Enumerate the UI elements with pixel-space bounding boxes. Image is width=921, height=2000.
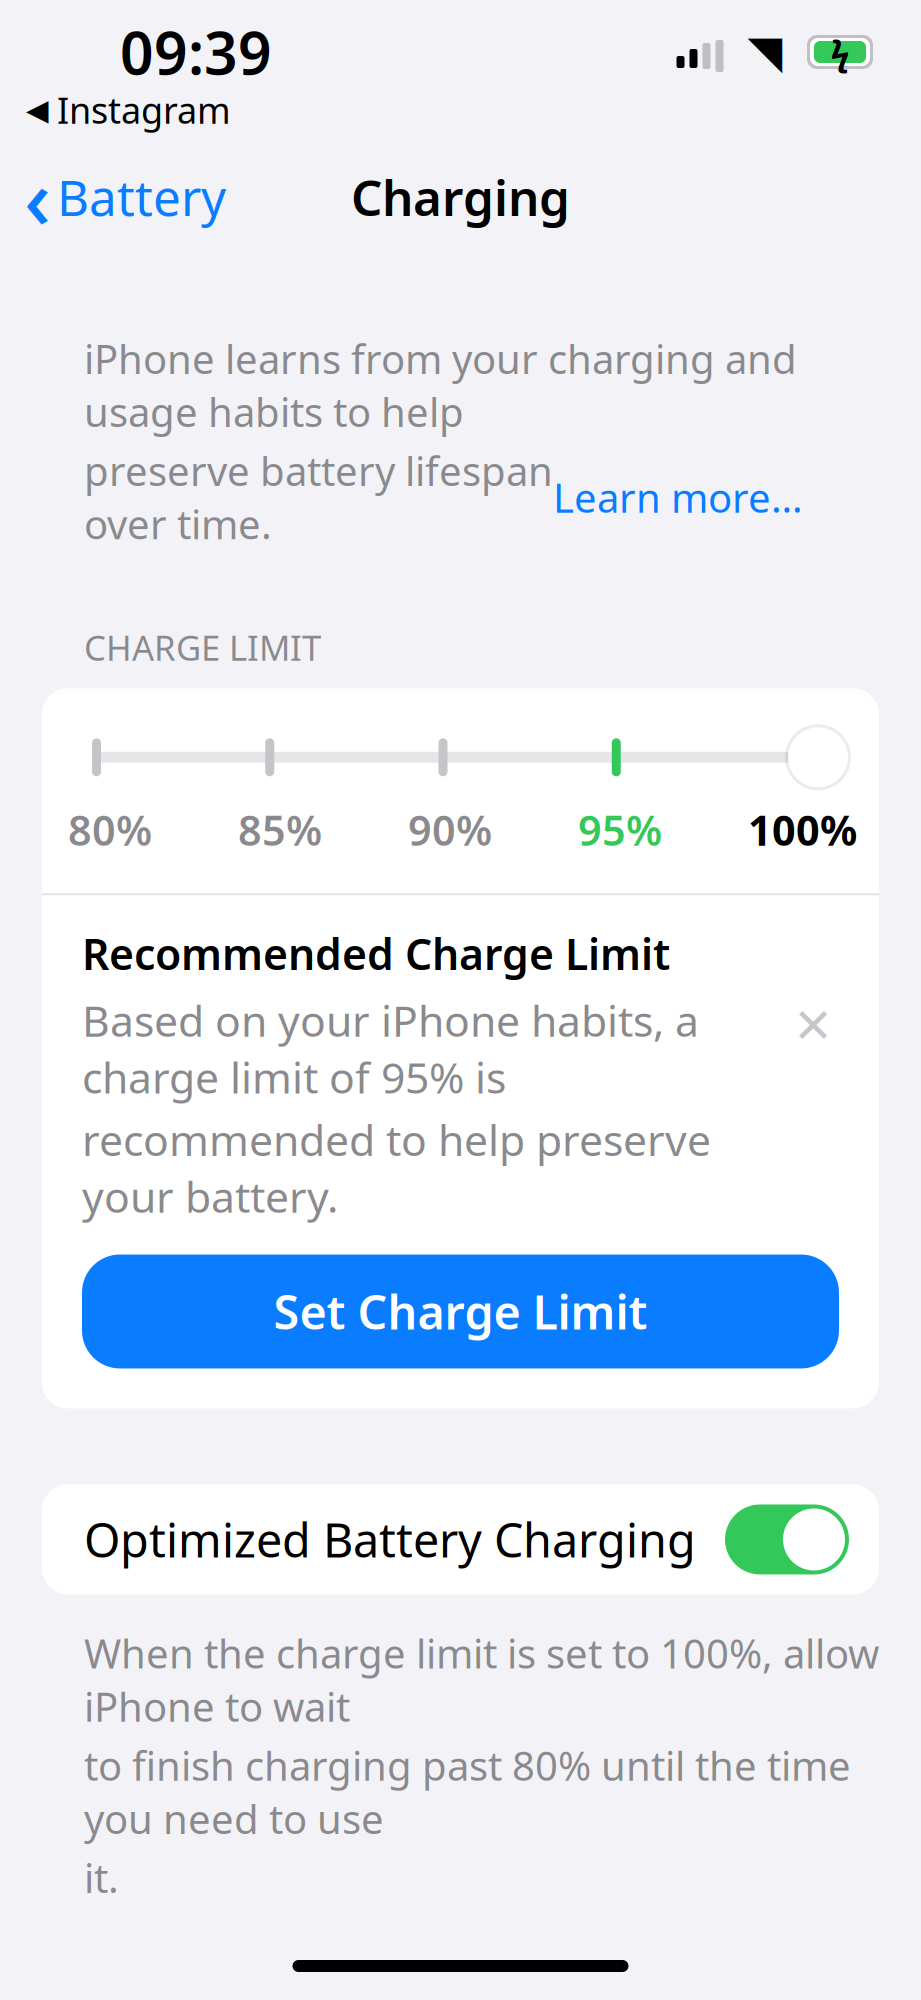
button[interactable]: ‹ [0,136,226,258]
staticText: iPhone learns from your charging and usa… [84,332,797,438]
staticText: Recommended Charge Limit [82,925,670,982]
staticText: Instagram [57,86,231,134]
staticText: preserve battery lifespan over time. [84,444,553,550]
staticText: 100% [748,802,857,857]
staticText: Battery [57,164,226,230]
button[interactable]: Learn more… [553,471,803,524]
staticText: 95% [578,802,662,857]
staticText: Optimized Battery Charging [84,1508,696,1570]
button[interactable]: Dismiss [787,1000,839,1052]
staticText: Set Charge Limit [273,1280,647,1342]
staticText: ‹ [24,142,51,252]
staticText: 80% [68,802,152,857]
staticText: When the charge limit is set to 100%, al… [84,1626,879,1733]
staticText: Based on your iPhone habits, a charge li… [82,992,699,1105]
staticText: ◥ [747,26,782,78]
button[interactable]: Optimized Battery Charging [42,1484,879,1594]
staticText: CHARGE LIMIT [84,624,321,670]
staticText: 09:39 [120,13,272,91]
staticText: ϟ [830,29,849,75]
staticText: it. [84,1851,119,1904]
staticText: to finish charging past 80% until the ti… [84,1739,851,1845]
staticText: 90% [408,802,492,857]
staticText: ◀ [26,93,49,127]
staticText: 85% [238,802,322,857]
staticText: recommended to help preserve your batter… [82,1111,711,1224]
button[interactable]: ◀ [0,84,231,136]
staticText: Charging [351,164,570,230]
staticText: ✕ [793,999,833,1053]
button[interactable]: Set Charge Limit [82,1254,839,1368]
staticText: Learn more… [553,471,803,524]
